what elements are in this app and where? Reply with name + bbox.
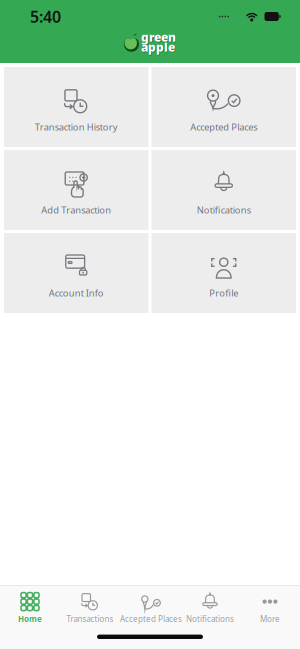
staticText: green [141,30,176,45]
button[interactable]: Transaction History [4,67,148,147]
staticText: Transactions [66,614,113,624]
staticText: Account Info [49,287,104,299]
staticText: Notifications [186,614,234,624]
staticText: Add Transaction [41,204,111,216]
button[interactable]: Home [0,592,60,624]
staticText: Accepted Places [190,121,257,133]
button[interactable]: Notifications [180,592,240,624]
button[interactable]: Notifications [151,150,296,230]
staticText: Home [18,614,42,624]
button[interactable]: Profile [151,233,296,313]
button[interactable]: Transactions [60,592,120,624]
staticText: Profile [209,287,238,299]
button[interactable]: Account Info [4,233,148,313]
staticText: apple [141,39,175,55]
staticText: Transaction History [35,121,118,133]
staticText: Notifications [197,204,251,216]
button[interactable]: Accepted Places [120,592,180,624]
staticText: More [260,614,280,624]
staticText: apple [141,40,175,55]
button[interactable]: Add Transaction [4,150,148,230]
staticText: Accepted Places [120,614,182,624]
button[interactable]: More [240,592,300,624]
staticText: 5:40 [30,6,61,27]
staticText: green [141,29,176,45]
button[interactable]: Accepted Places [151,67,296,147]
